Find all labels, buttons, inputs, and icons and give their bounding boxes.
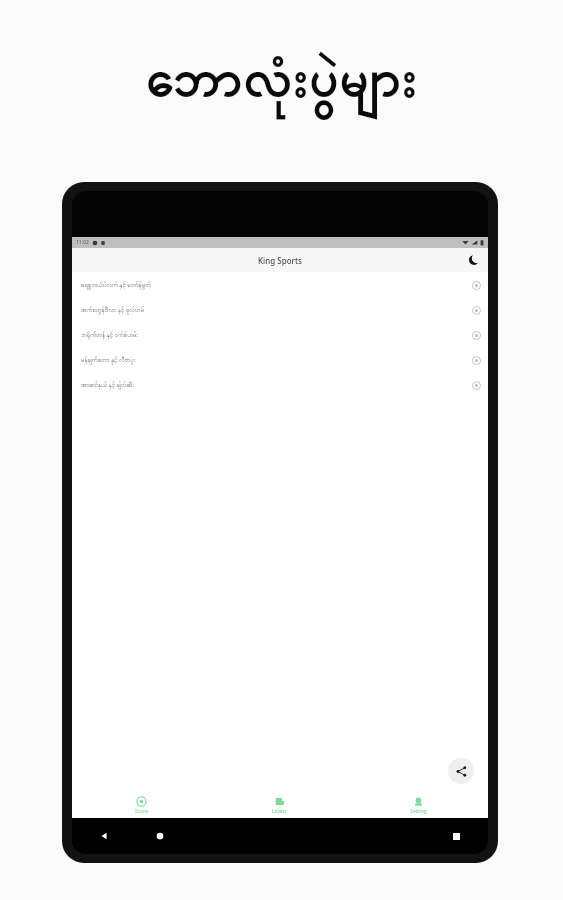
button[interactable]: Recent apps: [446, 826, 466, 846]
button[interactable]: Setting: [349, 792, 488, 818]
button[interactable]: Share: [448, 758, 474, 784]
button[interactable]: Home: [150, 826, 170, 846]
staticText: Latest: [272, 808, 287, 815]
button[interactable]: မန်ချက်စတာ နှင့် လီဗာပူး: [72, 348, 488, 373]
staticText: Score: [135, 808, 148, 815]
staticText: အာဆင်နယ် နှင့် ချဲလ်ဆီး: [81, 381, 472, 390]
button[interactable]: ခရစ္စတယ်ပဲလက် နှင့် ဘော်န်မွတ်: [72, 273, 488, 298]
staticText: အက်စတွန်ဗီလာ နှင့် ဖူလ်ဟမ်: [81, 306, 472, 315]
button[interactable]: Back: [94, 826, 114, 846]
staticText: 11:02: [76, 239, 89, 246]
staticText: ခရစ္စတယ်ပဲလက် နှင့် ဘော်န်မွတ်: [81, 281, 472, 290]
button[interactable]: Toggle dark mode: [466, 252, 482, 268]
staticText: ဘရိုက်တန် နှင့် ဝက်စ်ဟမ်း: [81, 331, 472, 340]
button[interactable]: Latest: [210, 792, 349, 818]
staticText: ဘောလုံးပွဲများ: [145, 45, 418, 122]
button[interactable]: Score: [72, 792, 210, 818]
button[interactable]: အက်စတွန်ဗီလာ နှင့် ဖူလ်ဟမ်: [72, 298, 488, 323]
button[interactable]: ဘရိုက်တန် နှင့် ဝက်စ်ဟမ်း: [72, 323, 488, 348]
staticText: King Sports: [258, 255, 302, 266]
staticText: မန်ချက်စတာ နှင့် လီဗာပူး: [81, 356, 472, 365]
staticText: Setting: [410, 808, 427, 815]
button[interactable]: အာဆင်နယ် နှင့် ချဲလ်ဆီး: [72, 373, 488, 398]
